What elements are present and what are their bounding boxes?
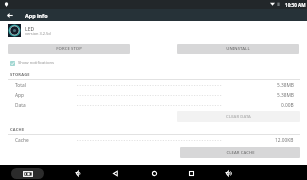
button[interactable]: Home: [148, 167, 160, 179]
staticText: version 3.2.5d: [25, 31, 51, 36]
button[interactable]: Back: [109, 167, 121, 179]
button[interactable]: Cache: [0, 137, 307, 143]
button[interactable]: CLEAR DATA: [177, 111, 300, 122]
staticText: 5.38MB: [277, 82, 294, 88]
button[interactable]: FORCE STOP: [8, 44, 130, 54]
staticText: FORCE STOP: [56, 46, 82, 52]
staticText: 5.38MB: [277, 92, 294, 98]
button[interactable]: Back: [4, 9, 16, 21]
button[interactable]: Show notifications: [10, 60, 55, 66]
staticText: App info: [25, 12, 48, 19]
staticText: Total: [15, 82, 26, 88]
button[interactable]: Screenshot: [11, 168, 44, 179]
staticText: Show notifications: [18, 60, 55, 66]
button[interactable]: CLEAR CACHE: [180, 147, 300, 158]
staticText: CLEAR CACHE: [226, 150, 255, 156]
staticText: CLEAR DATA: [226, 114, 251, 120]
button[interactable]: App: [0, 92, 307, 98]
staticText: LED: [25, 26, 35, 33]
staticText: App: [15, 92, 24, 98]
button[interactable]: Volume down: [72, 167, 84, 179]
staticText: 10:30 AM: [285, 2, 306, 8]
staticText: UNINSTALL: [226, 46, 250, 52]
button[interactable]: Volume up: [222, 167, 234, 179]
staticText: 12.00KB: [275, 137, 294, 143]
button[interactable]: Data: [0, 102, 307, 108]
staticText: 0.00B: [281, 102, 294, 108]
button[interactable]: Recents: [185, 167, 197, 179]
staticText: Cache: [15, 137, 29, 143]
staticText: CACHE: [10, 127, 25, 132]
button[interactable]: Total: [0, 82, 307, 88]
button[interactable]: UNINSTALL: [177, 44, 299, 54]
staticText: STORAGE: [10, 72, 30, 77]
staticText: Data: [15, 102, 26, 108]
